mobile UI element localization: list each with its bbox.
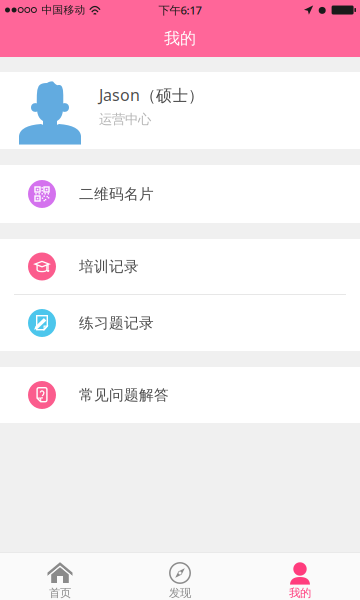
staticText: 我的 — [164, 28, 196, 49]
button[interactable]: 培训记录 — [0, 239, 360, 294]
button[interactable]: 发现 — [120, 553, 240, 600]
staticText: 运营中心 — [99, 111, 151, 128]
staticText: 下午6:17 — [158, 2, 201, 18]
button[interactable]: 常见问题解答 — [0, 367, 360, 423]
button[interactable]: 首页 — [0, 553, 120, 600]
staticText: 首页 — [49, 586, 71, 600]
button[interactable]: 我的 — [240, 553, 360, 600]
staticText: 二维码名片 — [79, 185, 154, 203]
staticText: 我的 — [289, 586, 311, 600]
staticText: 练习题记录 — [79, 314, 154, 332]
staticText: 发现 — [169, 586, 191, 600]
staticText: Jason（硕士） — [99, 84, 204, 106]
button[interactable]: 二维码名片 — [0, 165, 360, 223]
staticText: 常见问题解答 — [79, 386, 169, 404]
button[interactable]: Jason（硕士） — [0, 72, 360, 149]
staticText: 培训记录 — [79, 257, 139, 276]
button[interactable]: 练习题记录 — [0, 295, 360, 351]
staticText: 中国移动 — [41, 3, 85, 17]
